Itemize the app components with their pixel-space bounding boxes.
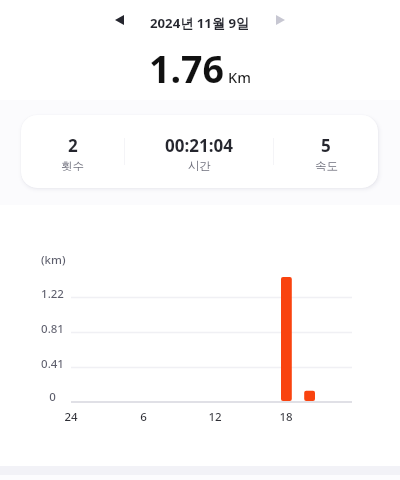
staticText: 시간 <box>188 159 211 173</box>
staticText: 12 <box>208 409 222 425</box>
staticText: 18 <box>279 409 293 425</box>
staticText: 0.81 <box>41 321 64 337</box>
staticText: 00:21:04 <box>165 134 233 157</box>
staticText: 2 <box>68 134 78 157</box>
staticText: 6 <box>140 409 147 425</box>
staticText: 0.41 <box>41 356 64 372</box>
staticText: 2024년 11월 9일 <box>150 14 250 32</box>
staticText: 속도 <box>315 159 338 173</box>
staticText: 5 <box>321 134 331 157</box>
button[interactable]: Previous day <box>106 7 132 33</box>
staticText: 1.76 <box>149 43 224 94</box>
staticText: Km <box>228 67 251 87</box>
staticText: 24 <box>64 409 78 425</box>
button[interactable]: Next day <box>267 7 293 33</box>
button[interactable]: 2 <box>21 131 124 173</box>
staticText: 0 <box>49 389 56 405</box>
staticText: 1.22 <box>41 286 64 302</box>
button[interactable]: 00:21:04 <box>125 131 273 173</box>
staticText: 횟수 <box>61 159 84 173</box>
button[interactable]: 5 <box>274 131 378 173</box>
staticText: (km) <box>41 252 66 268</box>
